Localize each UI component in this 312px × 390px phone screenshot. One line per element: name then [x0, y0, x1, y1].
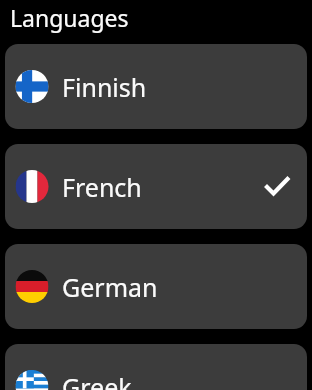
button[interactable]: Greek: [5, 344, 307, 390]
button[interactable]: French: [5, 144, 307, 229]
button[interactable]: German: [5, 244, 307, 329]
button[interactable]: Finnish: [5, 44, 307, 129]
